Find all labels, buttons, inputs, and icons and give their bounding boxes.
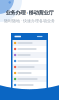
staticText: 随时随地 · 快速办理各项业务 (4, 18, 55, 23)
button[interactable] (12, 64, 46, 70)
button[interactable] (12, 76, 46, 82)
button[interactable] (12, 82, 46, 88)
staticText: 业务办理 · 移动营业厅 (5, 9, 53, 16)
button[interactable] (12, 46, 46, 52)
button[interactable] (12, 40, 46, 46)
button[interactable] (12, 70, 46, 76)
button[interactable] (12, 52, 46, 58)
button[interactable] (12, 58, 46, 64)
